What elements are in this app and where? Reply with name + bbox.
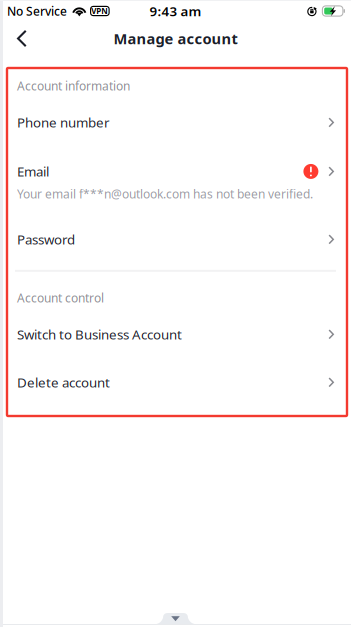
- staticText: Manage account: [113, 29, 237, 48]
- button[interactable]: Password: [0, 216, 351, 270]
- button[interactable]: Switch to Business Account: [0, 306, 351, 353]
- staticText: Phone number: [17, 114, 110, 131]
- staticText: Email: [17, 163, 49, 180]
- staticText: No Service: [7, 3, 67, 19]
- button[interactable]: Phone number: [0, 94, 351, 147]
- staticText: Your email f***n@outlook.com has not bee…: [17, 186, 313, 202]
- staticText: Password: [17, 230, 75, 248]
- staticText: Account information: [17, 78, 130, 94]
- staticText: VPN: [91, 6, 108, 16]
- staticText: Account control: [17, 290, 104, 306]
- button[interactable]: Scroll to dismiss: [156, 613, 194, 624]
- button[interactable]: Email: [0, 147, 351, 216]
- staticText: 9:43 am: [149, 2, 201, 20]
- staticText: Switch to Business Account: [17, 325, 182, 343]
- button[interactable]: Delete account: [0, 353, 351, 412]
- button[interactable]: Back: [0, 22, 41, 55]
- staticText: Delete account: [17, 373, 110, 391]
